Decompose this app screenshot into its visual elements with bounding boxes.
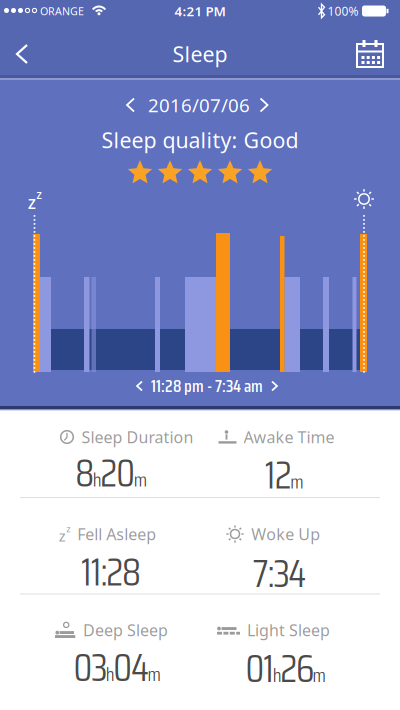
staticText: 26 [280,638,314,699]
button[interactable] [0,0,400,710]
staticText: 03 [73,637,107,698]
staticText: 7:34 [253,543,306,604]
staticText: m [147,659,160,689]
button[interactable]: Sleep Duration [59,426,193,448]
staticText: 8 [75,443,94,503]
staticText: m [290,466,303,497]
staticText: z [66,522,70,535]
staticText: Woke Up [251,523,320,545]
button[interactable]: Light Sleep [217,619,330,641]
staticText: 4:21 PM [174,2,225,20]
staticText: z [28,191,36,214]
staticText: m [312,660,325,690]
staticText: Sleep [172,40,227,68]
staticText: z [59,526,66,546]
staticText: 2016/07/06 [148,93,250,117]
staticText: Deep Sleep [83,619,168,641]
staticText: Sleep Duration [81,426,193,448]
staticText: 04 [113,637,149,698]
button[interactable]: Deep Sleep [55,619,168,641]
staticText: Fell Asleep [77,523,156,545]
button[interactable]: z [59,522,156,546]
staticText: Awake Time [243,426,334,448]
staticText: 20 [100,443,135,503]
button[interactable] [0,0,400,710]
staticText: m [134,464,147,495]
staticText: z [36,186,42,202]
staticText: ORANGE [40,4,84,18]
button[interactable]: 11:28 pm - 7:34 am [136,373,278,399]
staticText: 12 [265,445,292,505]
staticText: 11:28 [81,542,141,602]
staticText: 11:28 pm - 7:34 am [151,373,263,399]
staticText: h [273,660,282,690]
staticText: h [106,659,115,689]
staticText: 100% [327,3,358,19]
staticText: Light Sleep [247,619,330,641]
button[interactable] [0,0,400,710]
staticText: h [93,464,102,495]
button[interactable]: Woke Up [226,523,320,545]
button[interactable]: Awake Time [218,426,334,448]
staticText: 01 [245,638,274,699]
staticText: Sleep quality: Good [101,126,298,154]
button[interactable] [0,0,400,710]
